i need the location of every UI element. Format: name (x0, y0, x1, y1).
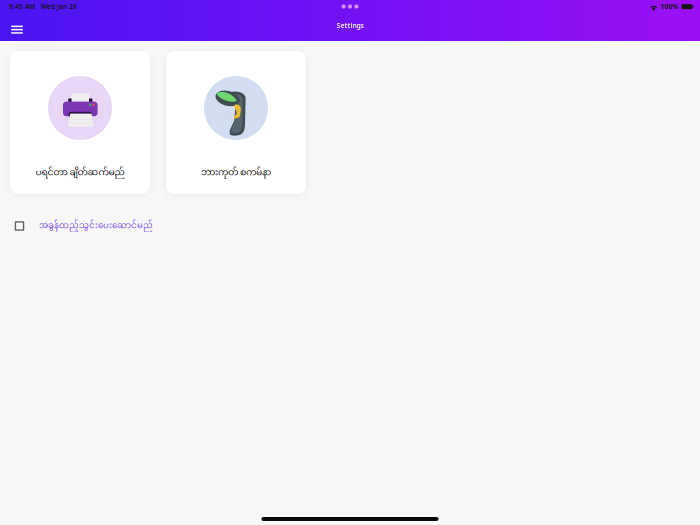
button[interactable]: အခွန်ထည့်သွင်းပေးဆောင်မည် (0, 211, 700, 241)
staticText: အခွန်ထည့်သွင်းပေးဆောင်မည် (39, 220, 153, 232)
button[interactable]: Menu (6, 14, 28, 40)
staticText: ဘားကုတ် စကမ်နာ (201, 166, 271, 179)
button[interactable]: ဘားကုတ် စကမ်နာ (166, 51, 306, 194)
staticText: Settings (336, 21, 363, 30)
button[interactable]: ပရင်တာ ချိတ်ဆက်မည် (10, 51, 150, 194)
staticText: 9:45 AM Wed Jan 26 (9, 2, 77, 11)
staticText: 100% (660, 2, 678, 11)
staticText: ပရင်တာ ချိတ်ဆက်မည် (35, 166, 124, 179)
